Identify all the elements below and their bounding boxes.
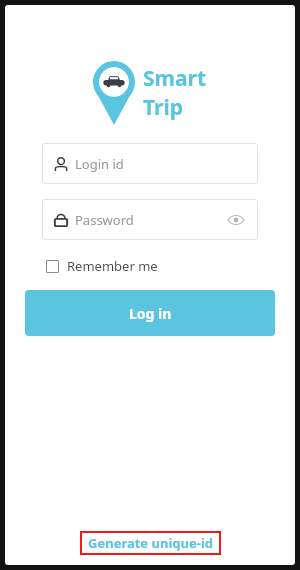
button[interactable]: Log in [25,290,275,336]
button[interactable]: Remember me [46,257,158,275]
button[interactable]: Generate unique-id [88,534,213,552]
button[interactable]: Password [42,199,258,240]
button[interactable]: Login id [42,143,258,184]
staticText: Login id [75,155,124,173]
staticText: Password [75,211,134,229]
staticText: Trip [143,93,184,122]
staticText: Smart [143,64,207,93]
button[interactable]: Show password [226,210,246,230]
staticText: Generate unique-id [88,534,213,552]
staticText: Remember me [67,257,158,275]
staticText: Log in [129,304,172,323]
